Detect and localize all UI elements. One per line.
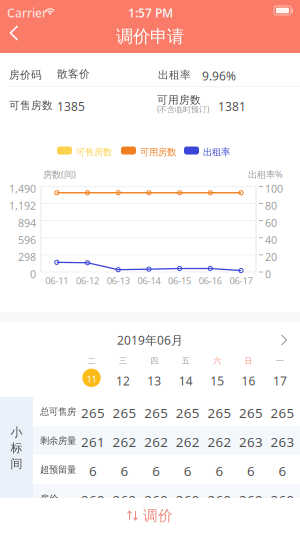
staticText: 06-14 (137, 274, 160, 287)
staticText: 可售房数 (9, 99, 53, 112)
staticText: 剩余房量 (40, 435, 76, 446)
staticText: 13 (147, 373, 161, 389)
staticText: 269 (271, 491, 295, 509)
staticText: 6 (121, 462, 129, 480)
staticText: 06-15 (168, 274, 191, 287)
staticText: 80 (265, 199, 277, 213)
staticText: 262 (113, 433, 137, 451)
staticText: 06-12 (76, 274, 99, 287)
staticText: 262 (144, 433, 168, 451)
staticText: 16 (242, 373, 256, 389)
staticText: 262 (207, 433, 231, 451)
staticText: 15 (210, 373, 224, 389)
staticText: 散客价 (57, 67, 90, 81)
staticText: 房价码 (9, 68, 42, 82)
staticText: 298 (18, 250, 36, 264)
staticText: 17 (273, 373, 287, 389)
staticText: 可用房数 (157, 93, 201, 107)
staticText: 894 (18, 216, 36, 230)
staticText: 596 (18, 233, 36, 247)
staticText: 六 (213, 356, 221, 366)
staticText: 1385 (57, 98, 85, 114)
button[interactable]: Back (0, 20, 34, 53)
staticText: 房价 (40, 493, 58, 504)
staticText: 265 (113, 404, 137, 422)
staticText: 263 (271, 433, 295, 451)
staticText: 269 (81, 491, 105, 509)
staticText: 6 (89, 462, 97, 480)
staticText: 14 (179, 373, 193, 389)
staticText: 1381 (218, 98, 246, 114)
staticText: 6 (279, 462, 287, 480)
staticText: 265 (271, 404, 295, 422)
button[interactable]: 调价 (0, 498, 300, 533)
staticText: 出租率 (203, 146, 230, 158)
staticText: 265 (81, 404, 105, 422)
staticText: 12 (116, 373, 130, 389)
staticText: 可售房数 (76, 146, 112, 158)
staticText: 1,192 (9, 199, 36, 213)
staticText: 标 (10, 441, 22, 455)
staticText: 269 (144, 491, 168, 509)
staticText: 9.96% (202, 68, 236, 84)
staticText: 06-16 (199, 274, 222, 287)
staticText: 0 (265, 267, 271, 281)
staticText: 269 (113, 491, 137, 509)
staticText: 超预留量 (40, 464, 76, 475)
staticText: 263 (239, 433, 263, 451)
staticText: 总可售房 (40, 406, 76, 417)
staticText: 出租率% (248, 168, 283, 180)
staticText: 1,490 (9, 181, 36, 196)
staticText: 06-13 (107, 274, 130, 287)
staticText: 269 (176, 491, 200, 509)
staticText: Carrier (7, 5, 47, 21)
staticText: 三 (119, 356, 127, 366)
staticText: 265 (207, 404, 231, 422)
staticText: 6 (152, 462, 160, 480)
staticText: 日 (245, 356, 253, 366)
staticText: 60 (265, 216, 277, 230)
staticText: 265 (144, 404, 168, 422)
staticText: 6 (215, 462, 223, 480)
staticText: 调价 (143, 506, 173, 524)
staticText: 261 (81, 433, 105, 451)
staticText: 五 (182, 356, 190, 366)
staticText: (不含临时预订) (157, 104, 209, 115)
staticText: 一 (276, 356, 284, 366)
staticText: 二 (87, 356, 95, 366)
staticText: 20 (265, 250, 277, 264)
staticText: 11 (86, 373, 96, 385)
staticText: 40 (265, 233, 277, 247)
staticText: 2019年06月 (117, 332, 183, 348)
staticText: 269 (207, 491, 231, 509)
staticText: 265 (239, 404, 263, 422)
staticText: 小 (10, 425, 22, 440)
staticText: 1:57 PM (128, 5, 173, 21)
staticText: 06-17 (229, 274, 252, 287)
staticText: 265 (176, 404, 200, 422)
staticText: 房数(间) (43, 168, 76, 180)
staticText: 6 (184, 462, 192, 480)
staticText: 四 (150, 356, 158, 366)
staticText: 269 (239, 491, 263, 509)
staticText: 100 (265, 181, 283, 196)
staticText: 调价申请 (116, 26, 184, 47)
staticText: 间 (10, 456, 22, 471)
staticText: 06-11 (45, 274, 68, 287)
staticText: 262 (176, 433, 200, 451)
staticText: 6 (247, 462, 255, 480)
staticText: 可用房数 (140, 146, 176, 158)
staticText: 出租率 (158, 68, 191, 82)
button[interactable]: 2019年06月 (0, 330, 300, 350)
staticText: 0 (30, 267, 36, 281)
